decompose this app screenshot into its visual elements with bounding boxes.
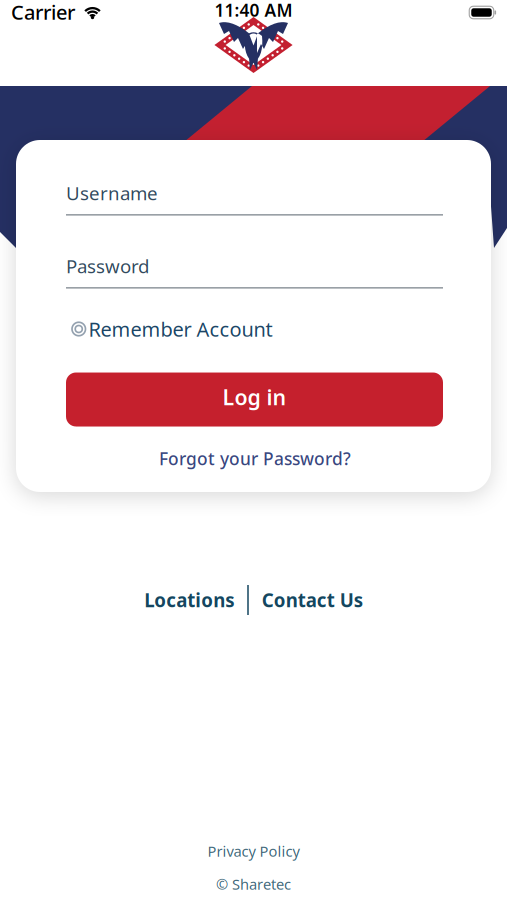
button[interactable]: Password [66,254,443,288]
button[interactable]: Privacy Policy [207,841,299,861]
button[interactable]: © Sharetec [216,874,291,894]
staticText: Carrier [11,0,75,25]
button[interactable]: Remember Account [66,316,272,342]
button[interactable]: Log in [66,372,443,426]
staticText: Forgot your Password? [159,447,351,470]
button[interactable]: Username [66,181,443,215]
button[interactable]: Forgot your Password? [159,447,351,470]
staticText: Remember Account [88,316,272,342]
button[interactable]: Contact Us [262,588,363,612]
staticText: Password [66,254,149,278]
staticText: Privacy Policy [207,841,299,861]
staticText: Log in [222,383,286,411]
button[interactable]: Locations [144,588,234,612]
staticText: 11:40 AM [214,0,292,21]
staticText: © Sharetec [216,874,291,894]
staticText: Locations [144,588,234,612]
staticText: Contact Us [262,588,363,612]
staticText: Username [66,181,158,205]
